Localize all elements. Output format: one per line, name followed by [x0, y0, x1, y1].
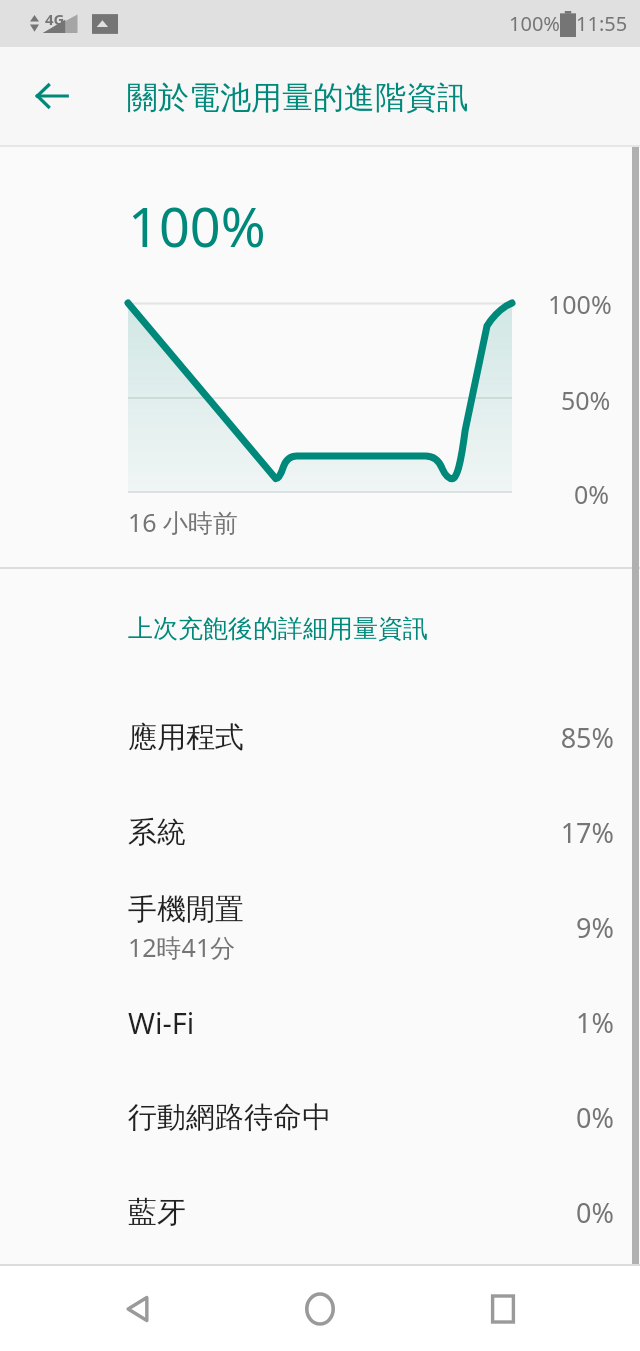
- staticText: 應用程式: [128, 719, 244, 756]
- staticText: 100%: [128, 189, 266, 263]
- button[interactable]: 應用程式: [0, 690, 640, 785]
- button[interactable]: Wi-Fi: [0, 975, 640, 1070]
- staticText: 17%: [560, 814, 614, 851]
- staticText: 4G: [45, 9, 65, 29]
- button[interactable]: Recent apps: [458, 1266, 548, 1351]
- staticText: 85%: [560, 719, 614, 756]
- staticText: 上次充飽後的詳細用量資訊: [128, 613, 428, 644]
- button[interactable]: Back: [18, 62, 86, 130]
- button[interactable]: 系統: [0, 785, 640, 880]
- staticText: 12時41分: [128, 930, 236, 964]
- staticText: 9%: [576, 909, 614, 946]
- staticText: 100%: [509, 10, 560, 37]
- staticText: 100%: [548, 287, 612, 321]
- staticText: 0%: [574, 477, 610, 511]
- staticText: 1%: [576, 1004, 614, 1041]
- staticText: 0%: [576, 1099, 614, 1136]
- button[interactable]: 手機閒置: [0, 880, 640, 975]
- staticText: 11:55: [576, 10, 628, 37]
- staticText: 藍牙: [128, 1194, 186, 1231]
- button[interactable]: Home: [275, 1266, 365, 1351]
- button[interactable]: 行動網路待命中: [0, 1070, 640, 1165]
- staticText: 關於電池用量的進階資訊: [127, 78, 468, 117]
- staticText: 系統: [128, 814, 186, 851]
- staticText: 50%: [561, 383, 611, 417]
- staticText: 手機閒置: [128, 891, 244, 928]
- staticText: Wi-Fi: [128, 1003, 195, 1042]
- button[interactable]: 藍牙: [0, 1165, 640, 1260]
- staticText: 0%: [576, 1194, 614, 1231]
- button[interactable]: Back: [93, 1266, 183, 1351]
- staticText: 16 小時前: [128, 505, 239, 539]
- staticText: 行動網路待命中: [128, 1099, 331, 1136]
